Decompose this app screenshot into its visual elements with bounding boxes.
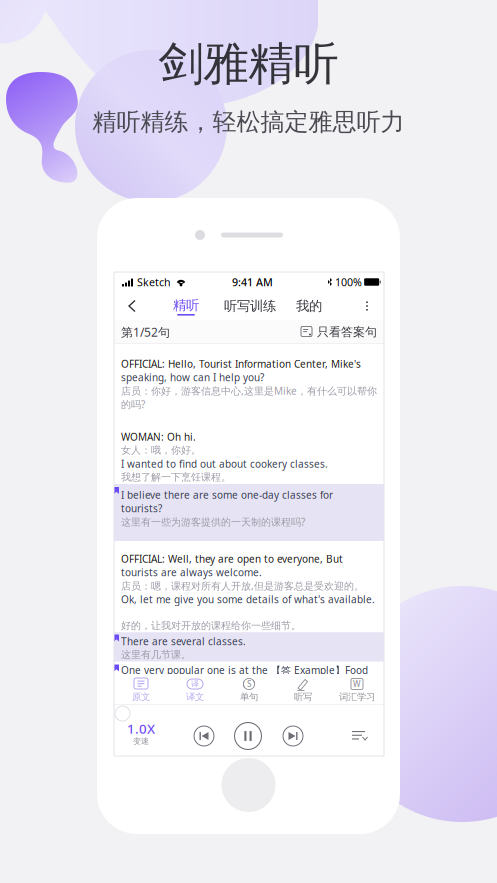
staticText: 听写训练	[224, 298, 276, 314]
staticText: 的吗?	[121, 397, 145, 411]
button[interactable]: 1.0X	[121, 721, 161, 749]
staticText: 这里有一些为游客提供的一天制的课程吗?	[121, 515, 305, 529]
staticText: 听写	[294, 691, 312, 703]
button[interactable]: Back	[120, 292, 144, 320]
staticText: 单句	[240, 691, 258, 703]
staticText: I wanted to find out about cookery class…	[121, 457, 328, 471]
staticText: Sketch	[137, 275, 171, 289]
button[interactable]: Next	[280, 723, 306, 749]
staticText: 变速	[133, 736, 149, 746]
staticText: 精听	[173, 297, 199, 313]
staticText: 我的	[296, 298, 322, 314]
button[interactable]: 只看答案句	[301, 322, 377, 342]
staticText: 女人：哦，你好。	[121, 444, 201, 457]
staticText: tourists?	[121, 501, 162, 515]
button[interactable]: Previous	[191, 723, 217, 749]
staticText: One very popular one is at the 【答 Exampl…	[121, 663, 368, 677]
staticText: 剑雅精听	[158, 36, 338, 92]
button[interactable]: 精听	[164, 297, 208, 325]
button[interactable]: 我的	[294, 292, 324, 320]
staticText: W	[353, 679, 361, 689]
staticText: 译文	[186, 691, 204, 703]
staticText: 1.0X	[127, 720, 155, 737]
staticText: 店员：你好，游客信息中心,这里是Mike，有什么可以帮你	[121, 384, 377, 398]
staticText: I believe there are some one-day classes…	[121, 488, 333, 502]
staticText: 这里有几节课。	[121, 648, 191, 661]
button[interactable]: 听写	[276, 674, 330, 705]
button[interactable]: More	[357, 292, 377, 320]
staticText: 店员：嗯，课程对所有人开放,但是游客总是受欢迎的。	[121, 579, 364, 593]
button[interactable]: S	[222, 674, 276, 705]
button[interactable]: Pause	[233, 721, 263, 751]
button[interactable]: 原文	[114, 674, 168, 705]
staticText: There are several classes.	[121, 634, 246, 648]
staticText: tourists are always welcome.	[121, 565, 262, 579]
staticText: OFFICIAL: Hello, Tourist Information Cen…	[121, 357, 361, 370]
staticText: 只看答案句	[317, 325, 377, 339]
staticText: 9:41 AM	[232, 275, 273, 289]
staticText: 第1/52句	[121, 324, 170, 340]
staticText: 100%	[335, 275, 362, 289]
staticText: 词汇学习	[339, 691, 375, 703]
button[interactable]: W	[330, 674, 384, 705]
staticText: OFFICIAL: Well, they are open to everyon…	[121, 552, 343, 565]
staticText: 译	[191, 679, 199, 689]
button[interactable]: 译	[168, 674, 222, 705]
staticText: S	[247, 679, 251, 689]
staticText: 好的，让我对开放的课程给你一些细节。	[121, 619, 301, 632]
button[interactable]: Playlist	[349, 725, 371, 747]
staticText: 我想了解一下烹饪课程。	[121, 471, 231, 484]
staticText: speaking, how can I help you?	[121, 370, 264, 384]
staticText: WOMAN: Oh hi.	[121, 430, 196, 443]
staticText: 精听精练，轻松搞定雅思听力	[92, 107, 404, 137]
button[interactable]: 听写训练	[224, 292, 276, 320]
staticText: Ok, let me give you some details of what…	[121, 592, 375, 606]
staticText: 原文	[132, 691, 150, 703]
